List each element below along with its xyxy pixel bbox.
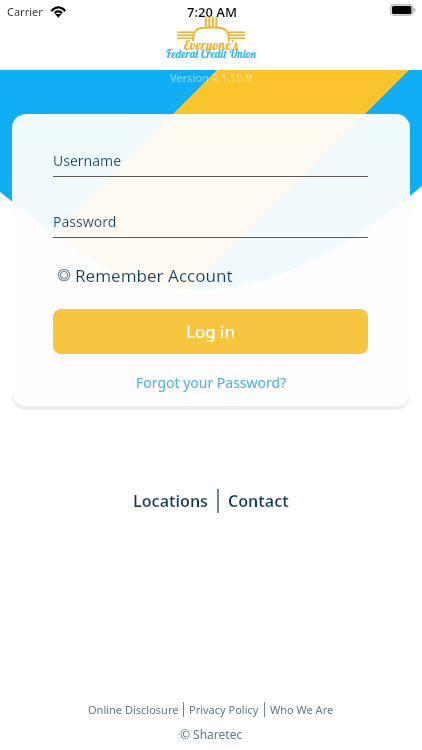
- button[interactable]: Contact: [223, 486, 294, 516]
- staticText: Password: [53, 212, 117, 231]
- staticText: 7:20 AM: [187, 3, 238, 21]
- staticText: Log in: [186, 320, 235, 343]
- staticText: Remember Account: [75, 264, 233, 287]
- button[interactable]: Online Disclosure: [84, 700, 183, 719]
- button[interactable]: Who We Are: [265, 700, 339, 719]
- button[interactable]: Privacy Policy: [184, 700, 264, 719]
- button[interactable]: Log in: [53, 309, 368, 354]
- button[interactable]: Remember Account: [56, 261, 233, 289]
- staticText: Version 2.1.10.9: [0, 70, 422, 85]
- button[interactable]: Locations: [128, 486, 213, 516]
- staticText: Username: [53, 151, 122, 170]
- staticText: © Sharetec: [180, 726, 243, 742]
- staticText: Everyone's: [0, 37, 422, 53]
- staticText: Federal Credit Union: [0, 47, 422, 61]
- staticText: Carrier: [7, 4, 43, 19]
- button[interactable]: Forgot your Password?: [130, 371, 293, 394]
